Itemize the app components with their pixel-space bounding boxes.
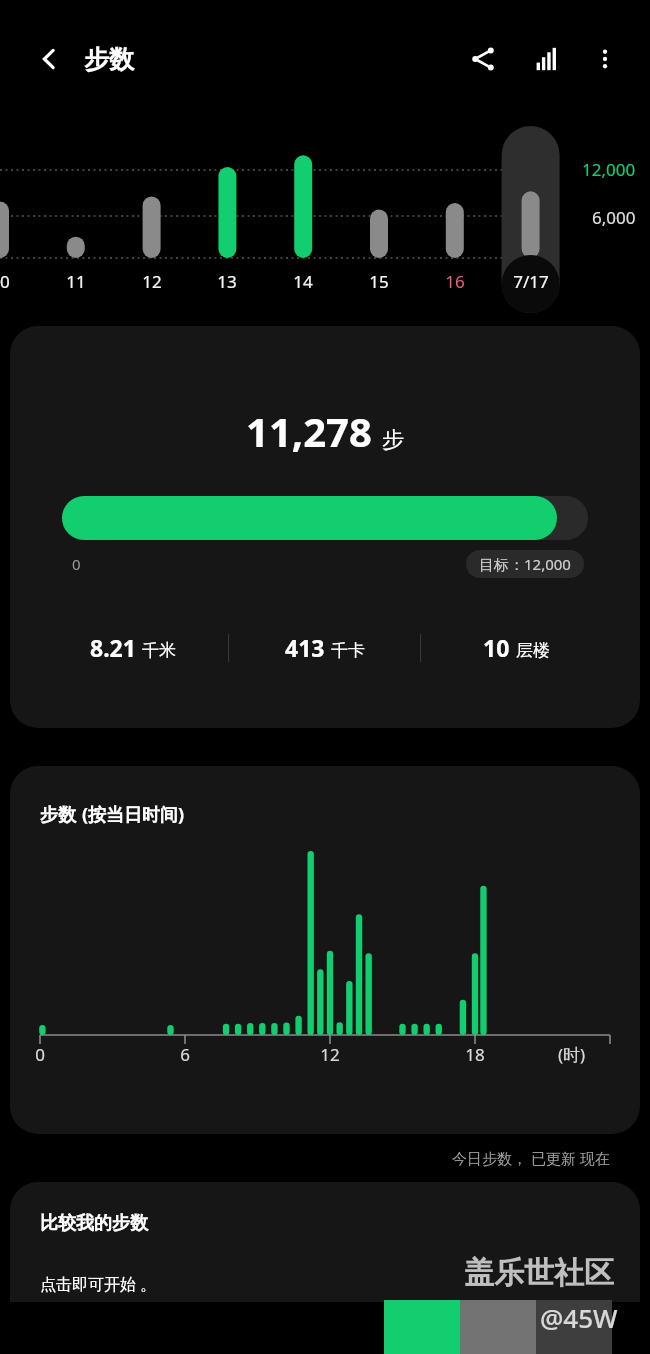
staticText: 步数 [84, 44, 134, 75]
button[interactable]: 步数 [10, 766, 640, 1134]
staticText: 12,000 [582, 158, 636, 181]
staticText: 7/17 [513, 270, 549, 293]
staticText: 点击即可开始 。 [40, 1273, 157, 1295]
staticText: (时) [558, 1043, 586, 1066]
staticText: 步数 [40, 804, 76, 827]
staticText: 413 [285, 632, 325, 663]
button[interactable]: More options [582, 36, 628, 82]
staticText: 11 [66, 270, 86, 293]
staticText: 今日步数， 已更新 现在 [452, 1148, 610, 1168]
staticText: 步 [382, 426, 404, 454]
staticText: 比较我的步数 [40, 1212, 148, 1235]
staticText: 18 [465, 1043, 485, 1066]
staticText: 10 [483, 632, 510, 663]
staticText: 16 [445, 270, 465, 293]
button[interactable]: Back [26, 36, 72, 82]
staticText: 千米 [142, 640, 176, 661]
staticText: (按当日时间) [82, 802, 185, 827]
staticText: 目标：12,000 [479, 554, 571, 574]
button[interactable]: 比较我的步数 [10, 1182, 640, 1302]
staticText: 0 [35, 1043, 45, 1066]
staticText: 6 [180, 1043, 190, 1066]
button[interactable]: Charts [522, 34, 572, 84]
staticText: 12 [320, 1043, 340, 1066]
staticText: 11,278 [246, 404, 372, 458]
staticText: 15 [369, 270, 389, 293]
staticText: 盖乐世社区 [464, 1254, 614, 1292]
staticText: @45W [540, 1300, 618, 1335]
staticText: 12 [142, 270, 162, 293]
staticText: 0 [72, 554, 81, 574]
staticText: 13 [217, 270, 237, 293]
staticText: 14 [293, 270, 313, 293]
button[interactable]: Share [458, 34, 508, 84]
staticText: 10 [0, 270, 10, 293]
staticText: 千卡 [331, 640, 365, 661]
staticText: 8.21 [90, 632, 136, 663]
staticText: 层楼 [516, 640, 550, 661]
staticText: 6,000 [592, 206, 636, 229]
button[interactable]: 11,278 [10, 326, 640, 728]
